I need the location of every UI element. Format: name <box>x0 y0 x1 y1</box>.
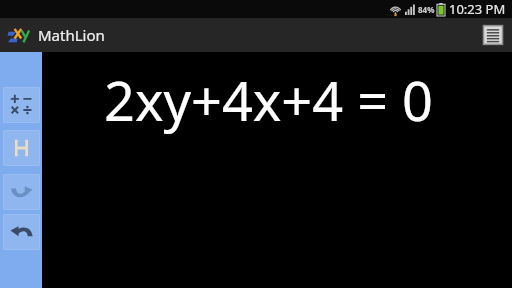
staticText: 2xy+4x+4 = 0 <box>104 63 433 137</box>
staticText: MathLion <box>38 25 105 45</box>
staticText: 84% <box>418 4 435 15</box>
button[interactable]: Undo <box>3 214 40 250</box>
button[interactable]: Operations <box>3 87 40 123</box>
button[interactable]: Menu <box>482 23 504 47</box>
button[interactable]: Redo <box>3 174 40 210</box>
staticText: 10:23 PM <box>449 0 506 18</box>
button[interactable]: H <box>3 130 40 166</box>
